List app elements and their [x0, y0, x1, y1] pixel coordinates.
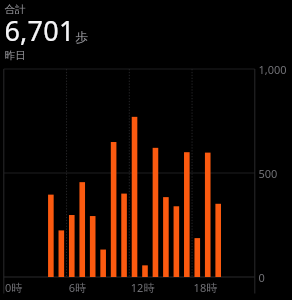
button[interactable]: Daily step count chart: [0, 0, 292, 300]
